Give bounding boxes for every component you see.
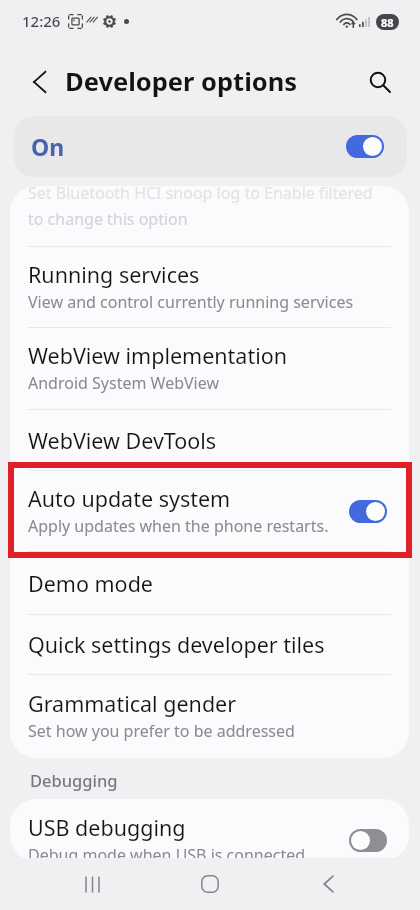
staticText: Running services — [28, 260, 200, 289]
staticText: Quick settings developer tiles — [28, 630, 325, 659]
staticText: WebView implementation — [28, 341, 288, 370]
staticText: Demo mode — [28, 569, 153, 598]
button[interactable]: Back — [302, 858, 356, 910]
staticText: to change this option — [28, 208, 188, 230]
button[interactable]: Home — [183, 858, 237, 910]
staticText: Auto update system — [28, 484, 231, 513]
staticText: On — [31, 131, 65, 162]
button[interactable]: WebView DevTools — [10, 410, 409, 470]
staticText: Set how you prefer to be addressed — [28, 720, 295, 742]
staticText: Debugging — [30, 769, 118, 791]
button[interactable]: Search — [360, 62, 400, 102]
staticText: View and control currently running servi… — [28, 291, 354, 313]
staticText: Apply updates when the phone restarts. — [28, 515, 329, 537]
button[interactable]: Quick settings developer tiles — [10, 615, 409, 674]
button[interactable]: USB debugging — [10, 809, 409, 861]
staticText: Set Bluetooth HCI snoop log to Enable fi… — [28, 186, 373, 204]
button[interactable]: Recent apps — [65, 858, 119, 910]
button[interactable]: Navigate up — [22, 63, 60, 101]
staticText: Developer options — [65, 64, 298, 99]
staticText: Grammatical gender — [28, 689, 237, 718]
button[interactable]: Auto update system — [10, 471, 409, 551]
button[interactable]: Demo mode — [10, 552, 409, 614]
staticText: 88 — [381, 15, 394, 30]
staticText: 12:26 — [22, 11, 61, 31]
button[interactable]: Running services — [10, 247, 409, 327]
staticText: WebView DevTools — [28, 426, 217, 455]
staticText: Debug mode when USB is connected — [28, 844, 306, 861]
staticText: USB debugging — [28, 813, 186, 842]
button[interactable]: Grammatical gender — [10, 675, 409, 758]
button[interactable]: WebView implementation — [10, 328, 409, 409]
staticText: Android System WebView — [28, 372, 220, 394]
button[interactable]: On — [14, 116, 407, 177]
